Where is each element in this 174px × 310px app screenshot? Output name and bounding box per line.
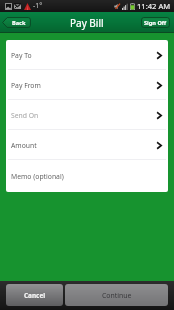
button[interactable]: Pay To — [6, 40, 168, 70]
button[interactable]: Cancel — [6, 284, 63, 306]
staticText: 11:42 AM — [137, 1, 171, 11]
button[interactable]: Continue — [65, 284, 168, 306]
button[interactable]: Send On — [6, 100, 168, 130]
button[interactable]: Sign Off — [141, 17, 170, 28]
staticText: Memo (optional) — [11, 172, 64, 181]
staticText: Pay Bill — [70, 16, 104, 30]
staticText: Continue — [102, 291, 132, 300]
button[interactable]: Back — [2, 17, 31, 28]
button[interactable]: Amount — [6, 130, 168, 160]
button[interactable]: Pay From — [6, 70, 168, 100]
staticText: -1° — [33, 1, 43, 11]
staticText: Cancel — [24, 291, 46, 300]
button[interactable]: Memo (optional) — [6, 160, 168, 192]
staticText: Amount — [11, 141, 37, 150]
staticText: Pay To — [11, 51, 32, 60]
staticText: Sign Off — [144, 19, 167, 27]
staticText: Pay From — [11, 81, 41, 90]
staticText: Send On — [11, 111, 39, 120]
staticText: Back — [12, 19, 26, 27]
